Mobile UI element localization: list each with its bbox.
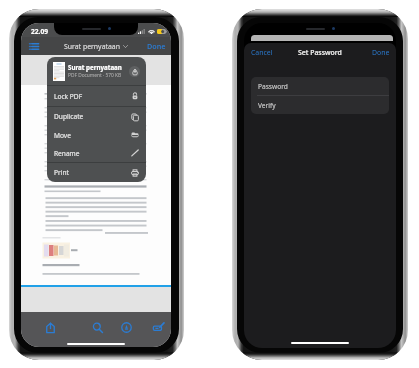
button[interactable]: Cancel: [251, 48, 273, 57]
button[interactable]: Surat pernyataan: [64, 42, 128, 51]
button[interactable]: Lock PDF: [47, 86, 146, 106]
staticText: PDF Document · 570 KB: [68, 72, 122, 79]
staticText: Rename: [54, 149, 80, 158]
button[interactable]: Table of contents: [26, 38, 42, 54]
button[interactable]: Print: [47, 163, 146, 182]
button[interactable]: Share: [39, 316, 61, 338]
staticText: Surat pernyataan: [68, 63, 122, 71]
button[interactable]: Done: [147, 41, 166, 51]
staticText: Verify: [258, 101, 276, 110]
staticText: Password: [258, 82, 288, 91]
button[interactable]: Done: [372, 48, 390, 57]
staticText: 22.09: [31, 27, 48, 36]
staticText: Print: [54, 168, 69, 177]
staticText: Surat pernyataan: [64, 42, 120, 51]
staticText: Lock PDF: [54, 92, 83, 101]
button[interactable]: Sign: [147, 316, 169, 338]
button[interactable]: Duplicate: [47, 107, 146, 126]
button[interactable]: Verify: [251, 96, 389, 114]
staticText: Set Password: [298, 48, 342, 57]
button[interactable]: Move: [47, 126, 146, 144]
staticText: Move: [54, 131, 71, 140]
button[interactable]: Surat pernyataan: [47, 57, 146, 85]
button[interactable]: Password: [251, 77, 389, 95]
button[interactable]: Markup: [115, 316, 137, 338]
staticText: Duplicate: [54, 112, 84, 121]
button[interactable]: Search: [86, 316, 108, 338]
button[interactable]: Share: [129, 66, 140, 77]
button[interactable]: Rename: [47, 144, 146, 162]
